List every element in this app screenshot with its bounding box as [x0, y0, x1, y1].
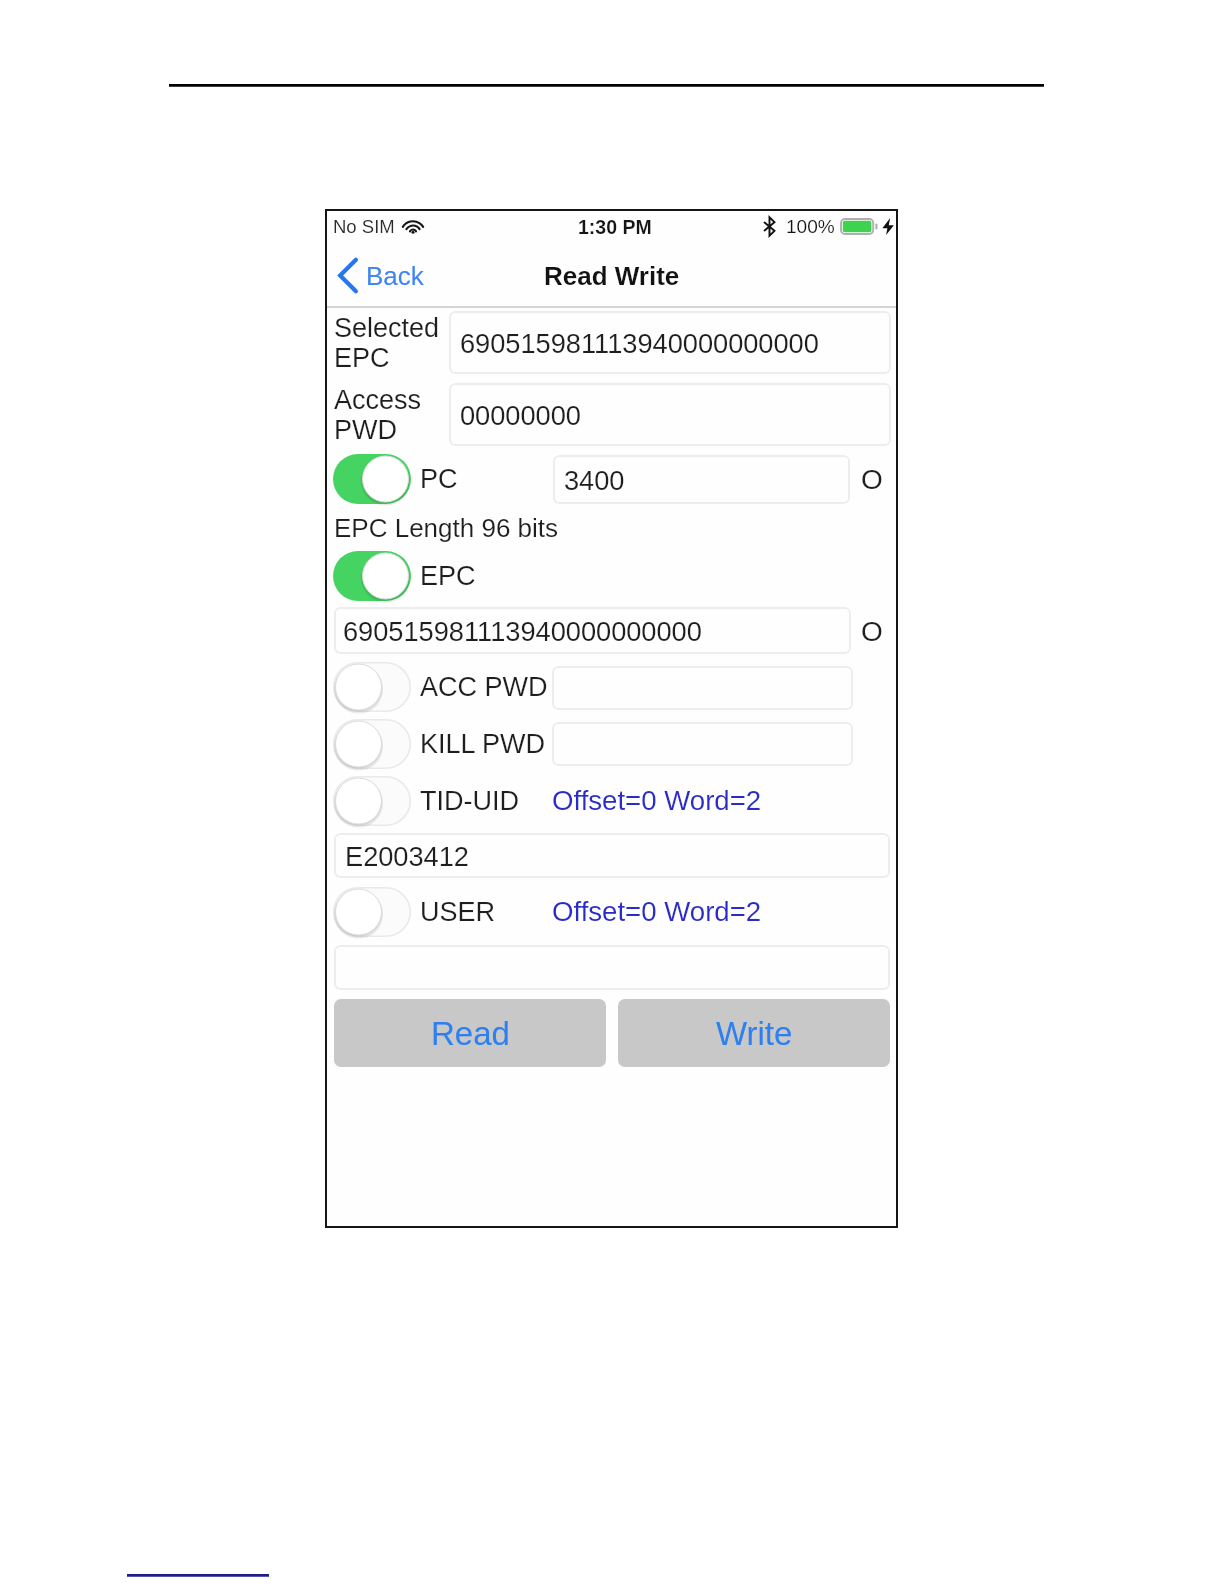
- button[interactable]: Switch off: [333, 719, 411, 769]
- staticText: 1:30 PM: [578, 216, 652, 238]
- staticText: 690515981113940000000000: [343, 616, 702, 646]
- staticText: Selected: [334, 313, 440, 343]
- staticText: KILL PWD: [420, 729, 546, 759]
- button[interactable]: Write: [618, 999, 890, 1067]
- staticText: No SIM: [333, 216, 395, 237]
- staticText: 690515981113940000000000: [460, 328, 819, 358]
- staticText: EPC: [334, 343, 390, 373]
- staticText: Access: [334, 385, 422, 415]
- button[interactable]: Read: [334, 999, 606, 1067]
- staticText: O: [861, 616, 883, 647]
- button[interactable]: E2003412: [334, 833, 890, 878]
- staticText: Write: [716, 1015, 793, 1052]
- button[interactable]: [552, 722, 853, 766]
- button[interactable]: 690515981113940000000000: [334, 607, 851, 654]
- button[interactable]: 3400: [553, 455, 850, 504]
- staticText: USER: [420, 897, 496, 927]
- button[interactable]: [552, 666, 853, 710]
- staticText: TID-UID: [420, 786, 519, 816]
- staticText: PWD: [334, 415, 397, 445]
- button[interactable]: 00000000: [449, 383, 891, 446]
- staticText: E2003412: [345, 841, 469, 871]
- button[interactable]: Back: [337, 258, 424, 293]
- staticText: Offset=0 Word=2: [552, 785, 762, 816]
- staticText: 3400: [564, 465, 625, 495]
- staticText: Read Write: [544, 261, 680, 290]
- staticText: Read: [431, 1015, 510, 1052]
- button[interactable]: 690515981113940000000000: [449, 311, 891, 374]
- button[interactable]: [334, 945, 890, 990]
- staticText: EPC Length 96 bits: [334, 513, 559, 542]
- button[interactable]: Switch off: [333, 776, 411, 826]
- button[interactable]: Switch off: [333, 887, 411, 937]
- staticText: PC: [420, 464, 458, 494]
- staticText: 00000000: [460, 400, 581, 430]
- staticText: Offset=0 Word=2: [552, 896, 762, 927]
- staticText: O: [861, 464, 883, 495]
- staticText: Back: [366, 261, 424, 290]
- staticText: EPC: [420, 561, 476, 591]
- staticText: ACC PWD: [420, 672, 548, 702]
- button[interactable]: Switch off: [333, 662, 411, 712]
- button[interactable]: Switch on: [333, 454, 411, 504]
- staticText: 100%: [786, 216, 835, 237]
- button[interactable]: Switch on: [333, 551, 411, 601]
